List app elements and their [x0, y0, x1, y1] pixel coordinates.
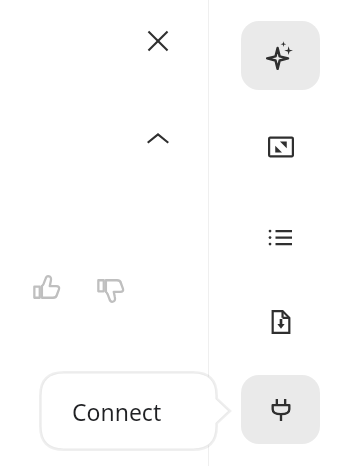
button[interactable]: Fullscreen: [241, 112, 320, 181]
button[interactable]: Save document: [241, 287, 320, 356]
button[interactable]: Thumbs down: [90, 270, 130, 310]
button[interactable]: Collapse: [138, 119, 178, 159]
button[interactable]: Thumbs up: [26, 267, 66, 307]
staticText: Connect: [72, 396, 162, 427]
button[interactable]: Connect: [41, 373, 229, 449]
button[interactable]: Close: [138, 21, 178, 61]
button[interactable]: List: [241, 203, 320, 272]
button[interactable]: Assistant: [241, 21, 320, 90]
button[interactable]: Connect device: [241, 375, 320, 444]
